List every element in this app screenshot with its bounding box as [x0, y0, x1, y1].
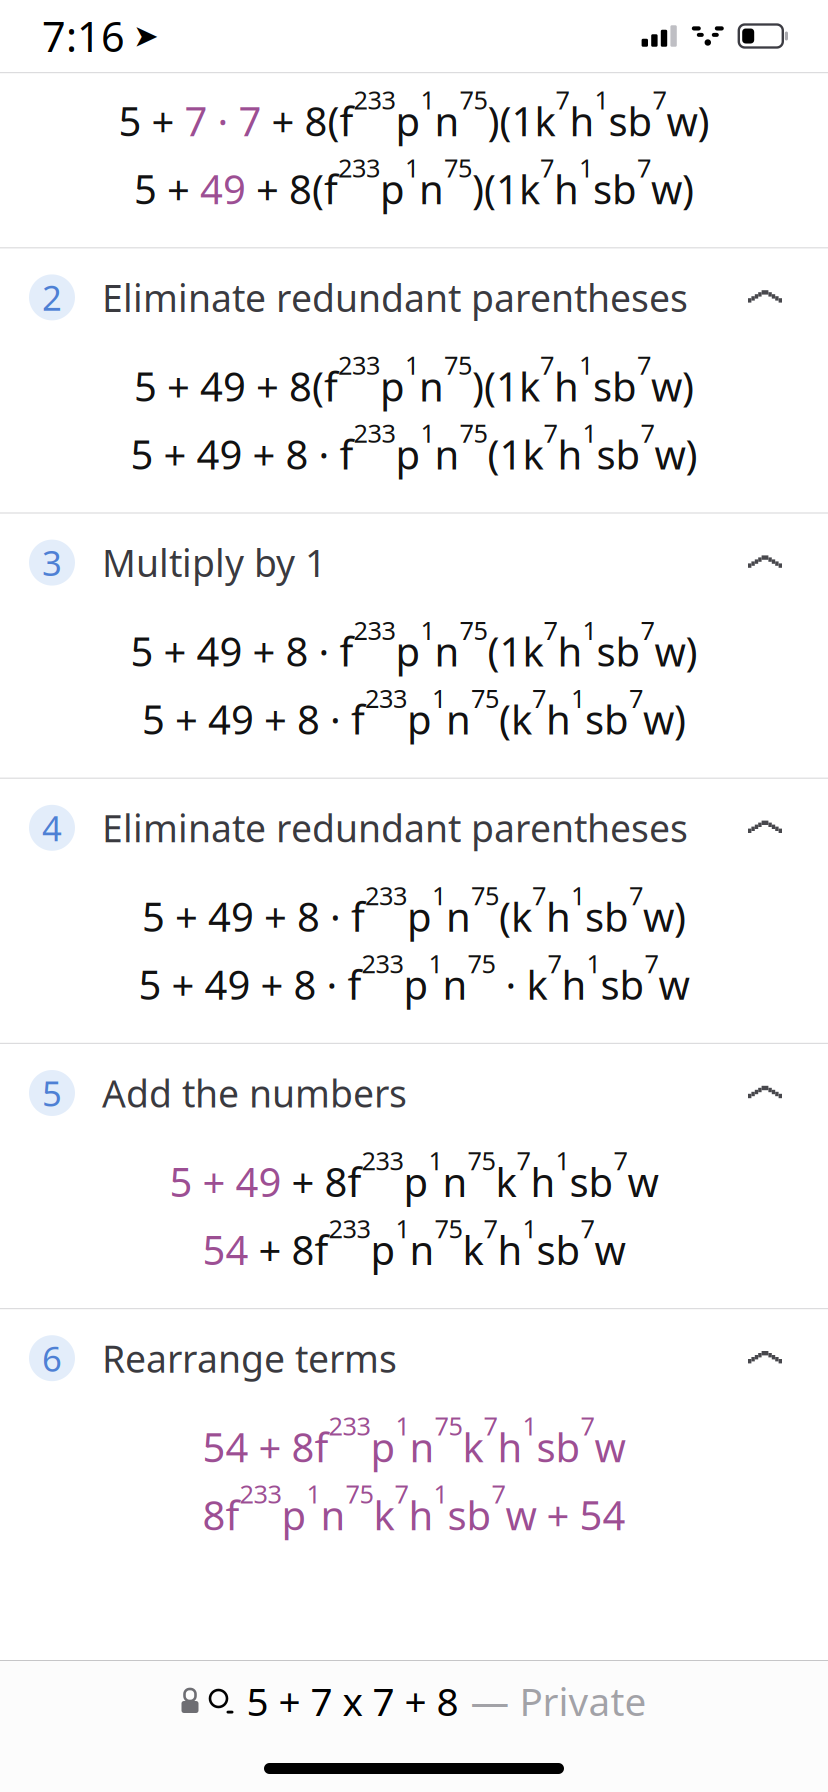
staticText: b: [588, 1154, 613, 1209]
staticText: 8(: [289, 359, 324, 413]
staticText: (: [499, 889, 511, 944]
staticText: f: [314, 1222, 328, 1277]
staticText: Add the numbers: [102, 1068, 407, 1118]
staticText: 49: [196, 427, 242, 481]
staticText: 5: [142, 692, 165, 746]
staticText: 7: [543, 416, 557, 450]
button[interactable]: 5 + 7 x 7 + 8: [0, 1661, 828, 1741]
staticText: p: [395, 93, 420, 148]
staticText: 7: [547, 946, 561, 981]
staticText: 75: [444, 348, 472, 382]
staticText: 233: [353, 82, 395, 117]
staticText: k: [534, 93, 555, 148]
staticText: 49: [235, 1154, 281, 1209]
staticText: 1: [496, 161, 519, 216]
staticText: 233: [365, 681, 407, 715]
staticText: w: [643, 692, 674, 746]
staticText: ·: [207, 93, 238, 148]
staticText: 8: [293, 957, 316, 1012]
staticText: 54: [579, 1487, 625, 1542]
staticText: ): [697, 93, 709, 148]
staticText: b: [555, 1222, 580, 1277]
staticText: f: [339, 427, 353, 481]
staticText: 6: [42, 1335, 62, 1381]
staticText: p: [403, 1154, 428, 1209]
staticText: 233: [328, 1211, 370, 1246]
staticText: h: [554, 161, 579, 216]
staticText: ·: [495, 957, 526, 1012]
button[interactable]: 6: [0, 1309, 828, 1407]
staticText: 1: [579, 348, 593, 382]
staticText: (: [499, 692, 511, 746]
staticText: b: [627, 93, 652, 148]
button[interactable]: 2: [0, 248, 828, 346]
staticText: f: [351, 889, 365, 944]
staticText: 75: [345, 1476, 373, 1511]
staticText: k: [511, 889, 532, 944]
staticText: 49: [208, 692, 254, 746]
staticText: 75: [467, 1143, 495, 1178]
staticText: 49: [204, 957, 250, 1012]
staticText: +: [261, 93, 304, 148]
staticText: +: [153, 427, 196, 481]
staticText: 5: [142, 889, 165, 944]
staticText: h: [561, 957, 586, 1012]
staticText: 1: [522, 1408, 536, 1443]
staticText: +: [248, 1419, 291, 1474]
staticText: f: [351, 692, 365, 746]
staticText: 1: [405, 150, 419, 185]
staticText: p: [395, 624, 420, 678]
staticText: w: [594, 1419, 625, 1474]
staticText: 1: [496, 359, 519, 413]
staticText: 8: [285, 427, 308, 481]
button[interactable]: 4: [0, 779, 828, 877]
staticText: p: [380, 359, 405, 413]
staticText: 1: [420, 416, 434, 450]
staticText: 7: [184, 93, 207, 148]
staticText: f: [324, 161, 338, 216]
staticText: +: [141, 93, 184, 148]
staticText: 5: [130, 427, 153, 481]
staticText: h: [557, 624, 582, 678]
staticText: 8: [324, 1154, 347, 1209]
staticText: s: [593, 359, 612, 413]
staticText: 7: [540, 348, 554, 382]
staticText: 8: [285, 624, 308, 678]
staticText: k: [522, 427, 543, 481]
staticText: k: [526, 957, 547, 1012]
staticText: 1: [306, 1476, 320, 1511]
staticText: b: [466, 1487, 491, 1542]
staticText: ➤: [133, 19, 159, 53]
staticText: w: [651, 359, 682, 413]
staticText: 7: [238, 93, 261, 148]
staticText: — Private: [470, 1675, 646, 1727]
staticText: 1: [571, 878, 585, 913]
staticText: 1: [432, 878, 446, 913]
staticText: Rearrange terms: [102, 1333, 397, 1383]
staticText: w: [658, 957, 689, 1012]
staticText: n: [446, 692, 471, 746]
staticText: 1: [405, 348, 419, 382]
button[interactable]: 3: [0, 514, 828, 612]
staticText: +: [161, 957, 204, 1012]
staticText: n: [409, 1419, 434, 1474]
staticText: f: [324, 359, 338, 413]
staticText: 5: [134, 359, 157, 413]
staticText: ): [682, 359, 694, 413]
staticText: 7: [555, 82, 569, 117]
staticText: f: [347, 1154, 361, 1209]
staticText: w: [627, 1154, 658, 1209]
staticText: n: [409, 1222, 434, 1277]
staticText: p: [407, 889, 432, 944]
staticText: 75: [459, 82, 487, 117]
staticText: s: [593, 161, 612, 216]
staticText: )(: [487, 93, 511, 148]
button[interactable]: 5: [0, 1044, 828, 1142]
staticText: n: [419, 359, 444, 413]
staticText: 1: [582, 416, 596, 450]
staticText: p: [370, 1419, 395, 1474]
staticText: 2: [42, 274, 62, 320]
staticText: Eliminate redundant parentheses: [102, 273, 688, 322]
staticText: 1: [579, 150, 593, 185]
staticText: 4: [42, 805, 62, 851]
